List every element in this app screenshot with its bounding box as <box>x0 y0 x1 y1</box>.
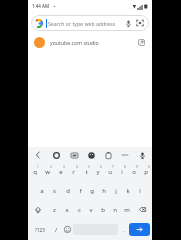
staticText: . <box>123 226 125 234</box>
staticText: w <box>45 168 50 176</box>
button[interactable]: g <box>86 181 98 200</box>
button[interactable]: t <box>80 162 92 181</box>
button[interactable]: / <box>50 221 62 238</box>
staticText: u <box>108 168 112 176</box>
button[interactable]: z <box>48 200 61 219</box>
button[interactable]: w <box>41 162 54 181</box>
staticText: x <box>65 206 69 214</box>
button[interactable]: f <box>74 181 86 200</box>
staticText: h <box>102 187 106 195</box>
staticText: 9 <box>136 165 138 169</box>
staticText: s <box>53 187 56 195</box>
staticText: p <box>144 168 148 176</box>
button[interactable]: Go <box>129 223 150 236</box>
button[interactable]: p <box>140 162 152 181</box>
button[interactable]: Voice search <box>122 17 134 29</box>
staticText: e <box>59 168 63 176</box>
staticText: 3 <box>63 165 65 169</box>
staticText: 1:44 AM <box>32 3 50 9</box>
staticText: 1 <box>37 165 39 169</box>
button[interactable]: r <box>67 162 80 181</box>
staticText: 8 <box>124 165 126 169</box>
button[interactable]: a <box>35 181 48 200</box>
staticText: t <box>85 168 88 176</box>
staticText: z <box>53 206 56 214</box>
button[interactable]: Emoji <box>62 221 73 238</box>
button[interactable]: l <box>134 181 146 200</box>
button[interactable]: u <box>104 162 116 181</box>
button[interactable]: youtube.com studio <box>28 34 152 50</box>
staticText: r <box>72 168 75 176</box>
staticText: i <box>121 168 123 176</box>
staticText: y <box>96 168 100 176</box>
button[interactable]: Settings <box>50 149 62 161</box>
staticText: v <box>89 206 93 214</box>
button[interactable]: j <box>110 181 122 200</box>
button[interactable]: o <box>128 162 140 181</box>
button[interactable]: e <box>54 162 67 181</box>
button[interactable]: m <box>121 200 133 219</box>
staticText: 4 <box>76 165 78 169</box>
staticText: b <box>101 206 105 214</box>
button[interactable]: Clipboard <box>102 149 114 161</box>
button[interactable]: n <box>109 200 121 219</box>
button[interactable]: Voice input <box>136 149 148 161</box>
staticText: a <box>40 187 44 195</box>
button[interactable]: Backspace <box>133 200 152 219</box>
button[interactable]: x <box>61 200 73 219</box>
button[interactable]: c <box>73 200 85 219</box>
button[interactable]: Stickers <box>85 149 97 161</box>
staticText: d <box>66 187 70 195</box>
button[interactable]: Edit query <box>136 37 146 47</box>
staticText: youtube.com studio <box>50 39 99 46</box>
staticText: q <box>33 168 37 176</box>
button[interactable]: d <box>61 181 74 200</box>
button[interactable]: h <box>98 181 110 200</box>
staticText: g <box>90 187 94 195</box>
button[interactable]: i <box>116 162 128 181</box>
staticText: m <box>124 206 130 214</box>
button[interactable]: . <box>118 221 129 238</box>
button[interactable]: q <box>28 162 41 181</box>
button[interactable]: b <box>97 200 109 219</box>
staticText: l <box>139 187 141 195</box>
staticText: 2 <box>50 165 52 169</box>
button[interactable]: Search or type web address <box>31 15 149 31</box>
button[interactable]: Back <box>32 149 44 161</box>
staticText: n <box>113 206 117 214</box>
staticText: 7 <box>112 165 114 169</box>
button[interactable]: v <box>85 200 97 219</box>
staticText: 0 <box>148 165 150 169</box>
button[interactable]: Shift <box>28 200 48 219</box>
button[interactable]: ?123 <box>30 221 50 238</box>
staticText: k <box>126 187 130 195</box>
button[interactable]: GIF <box>68 149 80 161</box>
button[interactable]: Google Lens <box>134 17 146 29</box>
staticText: Search or type web address <box>48 20 116 27</box>
button[interactable]: y <box>92 162 104 181</box>
button[interactable]: More <box>119 149 131 161</box>
staticText: 6 <box>100 165 102 169</box>
button[interactable]: k <box>122 181 134 200</box>
staticText: o <box>132 168 136 176</box>
staticText: f <box>79 187 82 195</box>
staticText: ?123 <box>35 227 45 233</box>
staticText: / <box>55 226 58 234</box>
staticText: 5 <box>88 165 90 169</box>
button[interactable]: s <box>48 181 61 200</box>
staticText: c <box>78 206 81 214</box>
staticText: j <box>115 187 117 195</box>
